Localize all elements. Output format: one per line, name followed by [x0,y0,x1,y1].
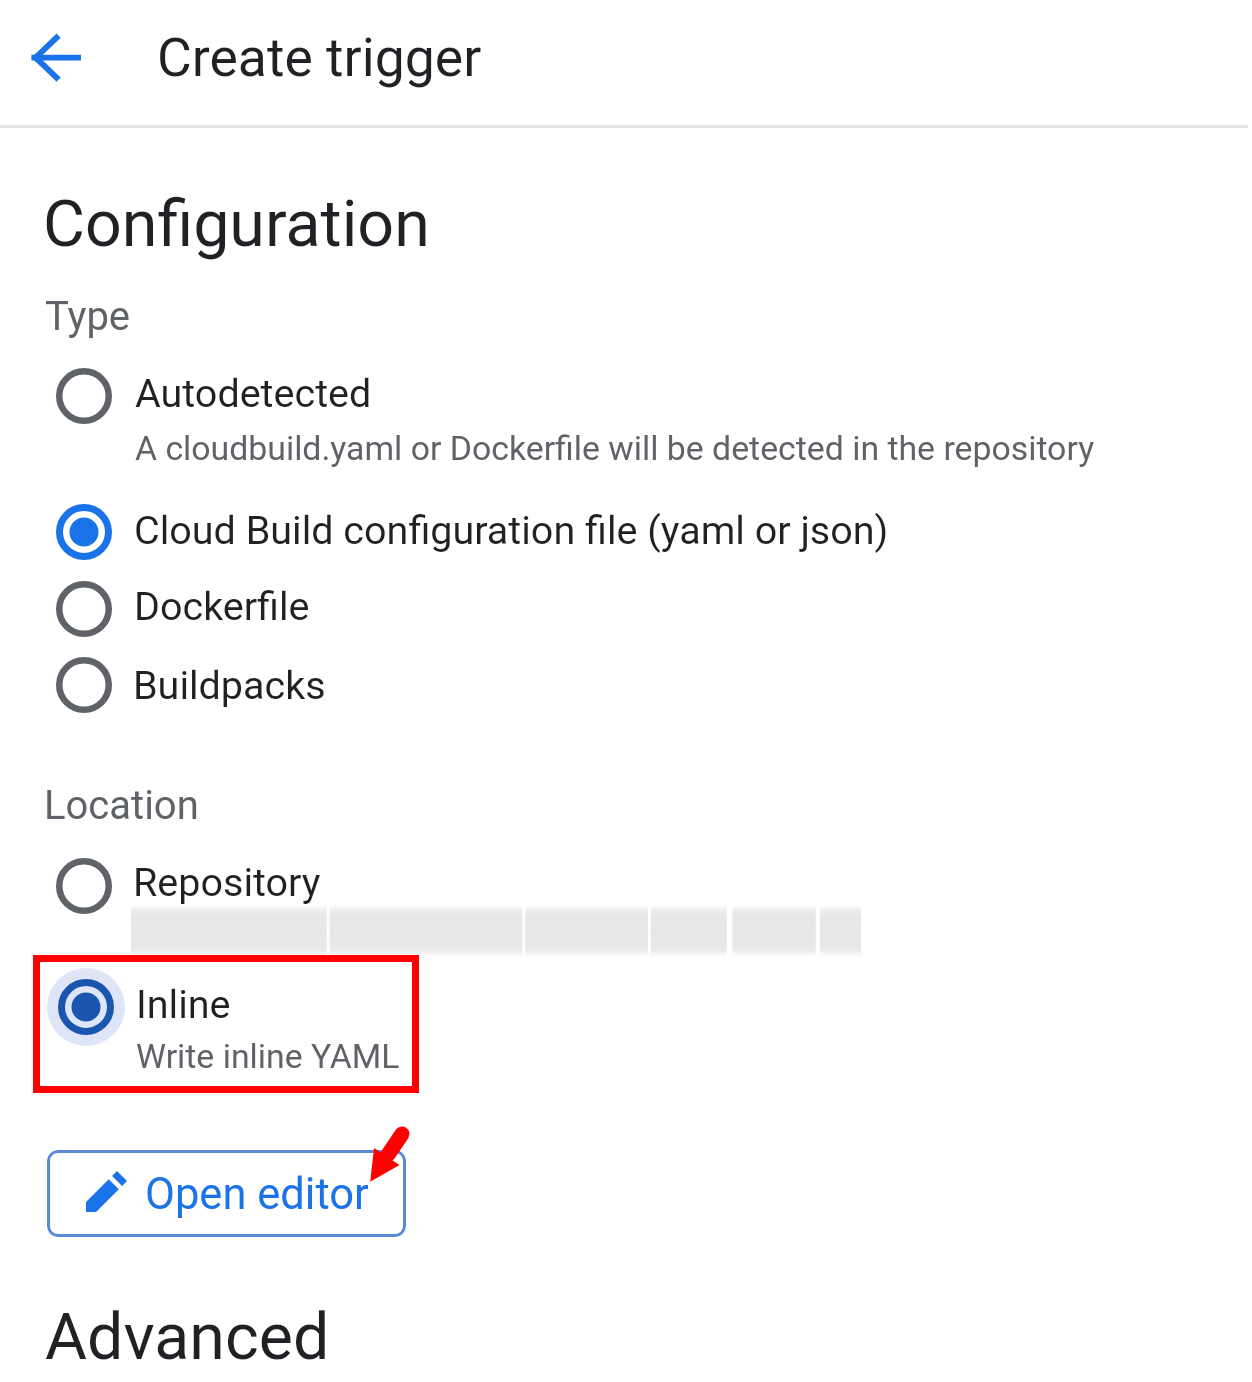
staticText: Cloud Build configuration file (yaml or … [134,507,889,553]
button[interactable]: Inline, Write inline YAML [33,955,419,1093]
button[interactable]: Buildpacks [44,655,334,717]
button[interactable]: Autodetected [44,362,1104,468]
staticText: Advanced [45,1299,330,1375]
staticText: Location [44,782,199,829]
staticText: Buildpacks [133,662,326,708]
button[interactable]: Open editor [47,1150,406,1237]
button[interactable]: Cloud Build configuration file (yaml or … [44,502,894,564]
button[interactable]: Dockerfile [44,579,324,641]
staticText: Write inline YAML [136,1037,400,1077]
staticText: Autodetected [135,370,372,416]
button[interactable]: Back [14,16,98,100]
staticText: A cloudbuild.yaml or Dockerfile will be … [135,429,1095,469]
staticText: Create trigger [157,26,482,89]
staticText: Inline [136,981,231,1027]
button[interactable]: Repository [44,855,864,953]
staticText: Dockerfile [134,583,310,629]
staticText: Configuration [43,186,430,262]
staticText: Repository [133,859,321,905]
staticText: Type [45,293,131,340]
staticText: Open editor [145,1169,369,1220]
